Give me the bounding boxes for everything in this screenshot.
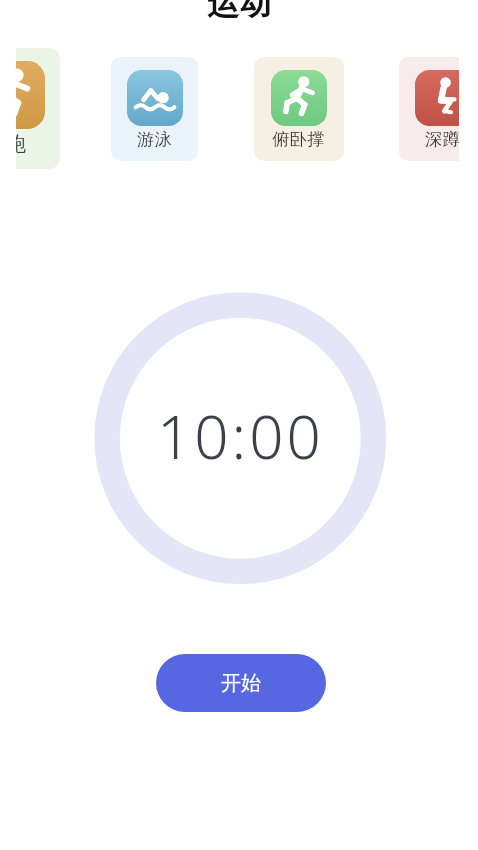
button[interactable]: 跑 <box>16 48 60 169</box>
button[interactable]: 俯卧撑 <box>254 57 344 161</box>
staticText: 深蹲 <box>425 129 459 150</box>
staticText: 游泳 <box>137 129 173 150</box>
button[interactable]: 深蹲 <box>399 57 459 161</box>
staticText: 10:00 <box>157 395 324 475</box>
button[interactable]: 游泳 <box>111 57 198 161</box>
staticText: 运动 <box>207 0 271 23</box>
button[interactable]: 开始 <box>156 654 326 712</box>
staticText: 开始 <box>221 671 261 696</box>
staticText: 俯卧撑 <box>272 129 326 150</box>
staticText: 跑 <box>16 132 27 157</box>
